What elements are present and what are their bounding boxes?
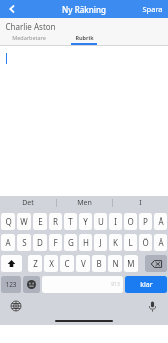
staticText: T <box>68 216 73 227</box>
button[interactable]: Å <box>154 213 167 230</box>
button[interactable]: 913 <box>42 276 123 293</box>
button[interactable]: Backspace <box>145 255 167 272</box>
staticText: W <box>20 216 28 227</box>
staticText: Ö <box>142 237 149 248</box>
button[interactable]: U <box>94 213 107 230</box>
button[interactable]: Rubrik <box>58 34 110 45</box>
button[interactable]: I <box>113 196 168 210</box>
button[interactable]: O <box>124 213 137 230</box>
button[interactable]: R <box>49 213 62 230</box>
staticText: E <box>38 216 43 227</box>
staticText: C <box>64 258 70 269</box>
button[interactable] <box>0 46 168 196</box>
button[interactable]: A <box>1 234 15 251</box>
staticText: Ä <box>158 237 164 248</box>
staticText: S <box>22 237 27 248</box>
button[interactable]: Z <box>28 255 42 272</box>
button[interactable]: Y <box>79 213 92 230</box>
button[interactable]: 123 <box>1 276 21 293</box>
button[interactable]: Change keyboard language <box>8 298 24 314</box>
staticText: Spara <box>142 4 163 14</box>
button[interactable]: Ä <box>154 234 167 251</box>
button[interactable]: Shift <box>1 255 22 272</box>
button[interactable]: M <box>124 255 138 272</box>
button[interactable]: H <box>79 234 92 251</box>
button[interactable]: F <box>49 234 62 251</box>
staticText: A <box>5 237 11 248</box>
button[interactable]: B <box>92 255 106 272</box>
staticText: J <box>99 237 102 248</box>
staticText: H <box>83 237 89 248</box>
staticText: K <box>113 237 118 248</box>
staticText: P <box>143 216 148 227</box>
staticText: Charlie Aston <box>5 21 56 32</box>
button[interactable]: Ö <box>139 234 152 251</box>
button[interactable]: Medarbetare <box>0 34 58 45</box>
staticText: Ny Räkning <box>62 4 106 15</box>
button[interactable]: K <box>109 234 122 251</box>
staticText: 913 <box>111 281 120 288</box>
staticText: X <box>49 258 54 269</box>
staticText: Det <box>22 198 34 208</box>
staticText: M <box>127 258 135 269</box>
button[interactable]: X <box>44 255 58 272</box>
staticText: U <box>98 216 104 227</box>
staticText: F <box>53 237 58 248</box>
staticText: R <box>53 216 58 227</box>
staticText: I <box>139 198 142 208</box>
staticText: O <box>127 216 134 227</box>
button[interactable]: Det <box>0 196 56 210</box>
button[interactable]: W <box>17 213 31 230</box>
button[interactable]: G <box>64 234 77 251</box>
staticText: Men <box>77 198 92 208</box>
button[interactable]: C <box>60 255 74 272</box>
button[interactable]: klar <box>125 276 167 293</box>
staticText: Q <box>5 216 12 227</box>
button[interactable]: S <box>17 234 31 251</box>
button[interactable]: D <box>33 234 47 251</box>
button[interactable]: N <box>108 255 122 272</box>
button[interactable]: I <box>109 213 122 230</box>
button[interactable]: Emoji <box>23 276 40 293</box>
staticText: I <box>114 216 117 227</box>
staticText: Rubrik <box>75 34 94 41</box>
button[interactable]: L <box>124 234 137 251</box>
button[interactable]: Spara <box>137 0 168 18</box>
button[interactable]: Dictation <box>144 298 160 314</box>
staticText: G <box>68 237 74 248</box>
button[interactable]: P <box>139 213 152 230</box>
staticText: Medarbetare <box>12 34 46 41</box>
button[interactable]: E <box>33 213 47 230</box>
staticText: Z <box>33 258 38 269</box>
staticText: B <box>96 258 102 269</box>
staticText: klar <box>140 280 153 290</box>
button[interactable]: Back <box>0 0 24 18</box>
button[interactable]: J <box>94 234 107 251</box>
button[interactable]: Q <box>1 213 15 230</box>
button[interactable]: Men <box>57 196 112 210</box>
staticText: L <box>128 237 133 248</box>
button[interactable]: T <box>64 213 77 230</box>
staticText: Y <box>83 216 88 227</box>
staticText: 123 <box>5 280 17 289</box>
staticText: V <box>81 258 86 269</box>
staticText: N <box>112 258 119 269</box>
staticText: Å <box>158 216 164 227</box>
button[interactable]: V <box>76 255 90 272</box>
staticText: D <box>37 237 43 248</box>
